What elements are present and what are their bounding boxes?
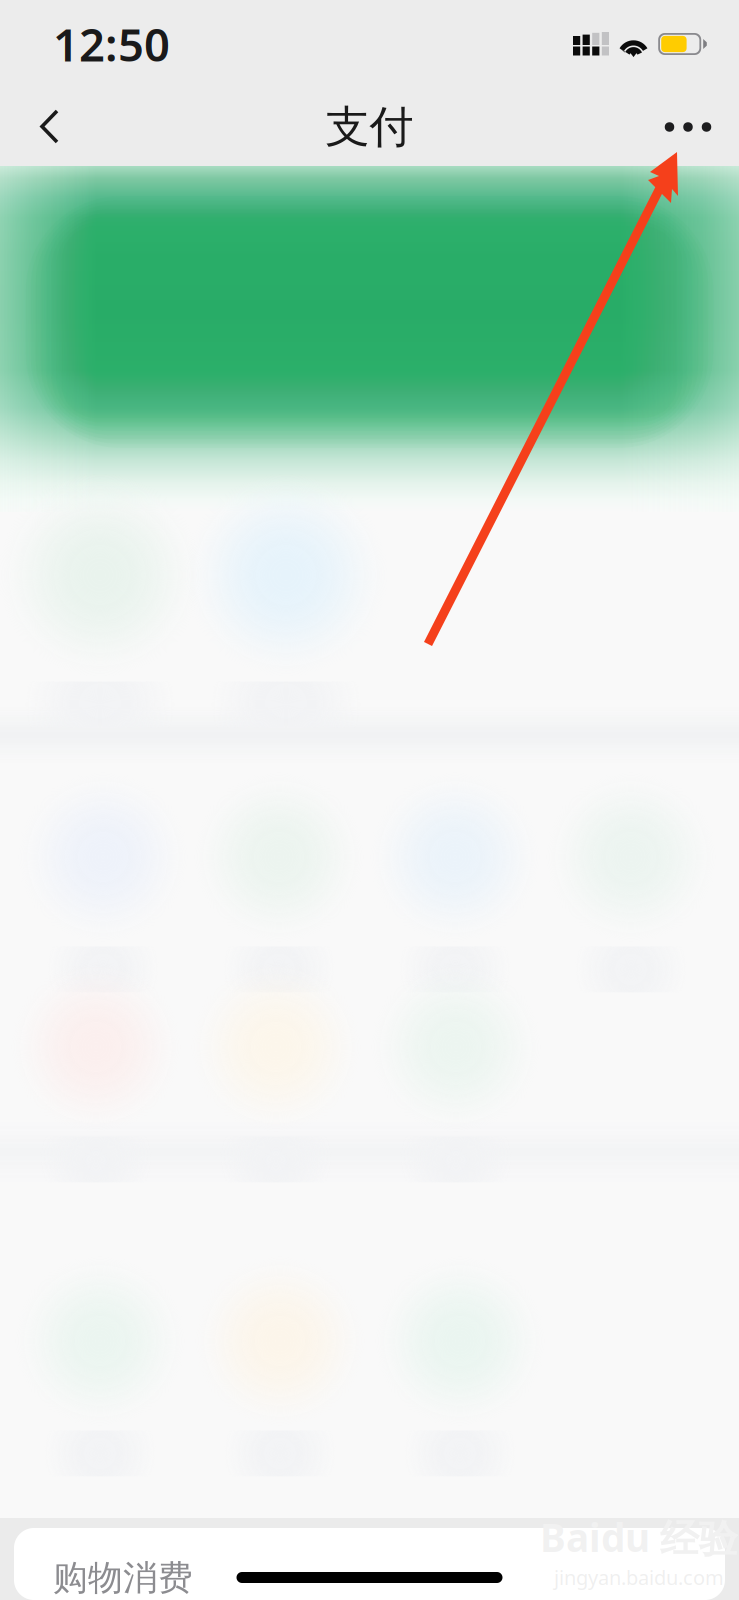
button[interactable]: Back (18, 92, 82, 162)
staticText: Baidu 经验 (540, 1511, 738, 1563)
staticText: 购物消费 (53, 1557, 193, 1599)
button[interactable]: 购物消费 (14, 1542, 725, 1600)
button[interactable]: More (655, 92, 721, 162)
staticText: 12:50 (53, 14, 170, 74)
staticText: 支付 (325, 100, 413, 154)
staticText: jingyan.baidu.com (554, 1564, 724, 1591)
